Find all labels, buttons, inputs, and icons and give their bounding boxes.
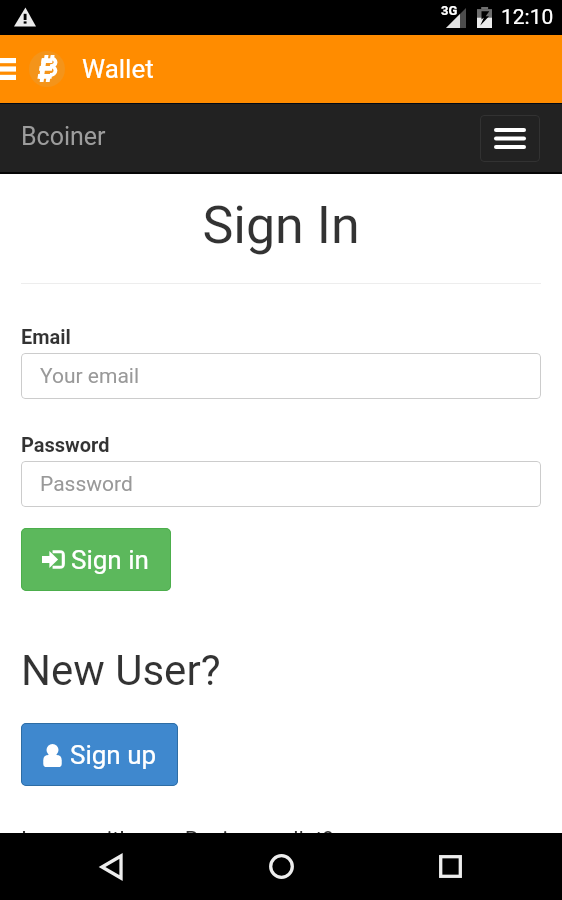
button[interactable]: Toggle navigation [480,115,540,162]
staticText: Password [40,472,133,497]
button[interactable]: Open navigation drawer [0,53,18,85]
button[interactable]: Recent apps [415,833,483,900]
staticText: Sign in [71,545,149,575]
staticText: Sign In [0,195,562,256]
staticText: Sign up [70,740,157,770]
button[interactable]: Your email [21,353,541,399]
staticText: 12:10 [501,5,554,30]
staticText: Issues with your Bcoiner wallet? [21,827,334,853]
staticText: Your email [40,364,140,389]
button[interactable]: Sign up [21,723,178,786]
staticText: 3G [441,3,458,18]
staticText: Wallet [82,54,154,84]
staticText: Bcoiner [21,122,106,151]
button[interactable]: Bcoiner [11,111,116,161]
button[interactable]: Password [21,461,541,507]
button[interactable]: Sign in [21,528,171,591]
button[interactable]: Home [247,833,315,900]
staticText: Password [21,433,110,456]
button[interactable]: Back [78,833,146,900]
staticText: New User? [21,646,221,695]
staticText: Email [21,325,71,348]
